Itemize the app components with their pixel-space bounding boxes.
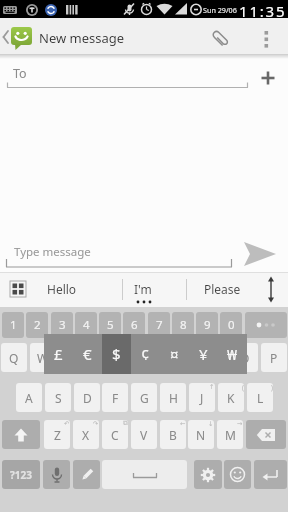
- staticText: P: [270, 350, 278, 366]
- staticText: K: [227, 390, 235, 406]
- button[interactable]: 6: [123, 312, 145, 338]
- staticText: 9: [204, 317, 211, 333]
- button[interactable]: 7: [148, 312, 170, 338]
- staticText: Type message: [14, 244, 91, 260]
- button[interactable]: A: [16, 383, 42, 412]
- button[interactable]: V: [131, 420, 157, 449]
- button[interactable]: [73, 460, 100, 489]
- button[interactable]: [194, 460, 222, 489]
- button[interactable]: ¢: [131, 334, 160, 374]
- button[interactable]: I: [203, 343, 229, 372]
- button[interactable]: L: [247, 383, 273, 412]
- button[interactable]: [208, 27, 233, 52]
- button[interactable]: U: [174, 343, 200, 372]
- button[interactable]: 5: [99, 312, 121, 338]
- staticText: W: [37, 350, 49, 366]
- button[interactable]: [245, 312, 287, 338]
- button[interactable]: F: [102, 383, 128, 412]
- staticText: Q: [9, 350, 19, 366]
- button[interactable]: B: [160, 420, 186, 449]
- button[interactable]: 0: [220, 312, 242, 338]
- staticText: T: [127, 350, 134, 366]
- button[interactable]: [254, 460, 287, 489]
- staticText: Sun 29/06: [203, 5, 237, 15]
- button[interactable]: [6, 241, 232, 268]
- staticText: ↑: [209, 383, 215, 391]
- button[interactable]: H: [160, 383, 186, 412]
- button[interactable]: [224, 460, 251, 489]
- staticText: 5: [107, 317, 114, 333]
- button[interactable]: [102, 460, 187, 489]
- staticText: ): [271, 383, 273, 392]
- button[interactable]: ¥: [189, 334, 218, 374]
- button[interactable]: [258, 24, 274, 50]
- staticText: A: [25, 390, 33, 406]
- button[interactable]: D: [74, 383, 100, 412]
- button[interactable]: 2: [26, 312, 48, 338]
- staticText: ₩: [227, 344, 238, 364]
- staticText: ↷: [93, 420, 99, 428]
- button[interactable]: €: [73, 334, 102, 374]
- staticText: 11:35: [239, 1, 287, 19]
- button[interactable]: O: [232, 343, 258, 372]
- button[interactable]: R: [88, 343, 114, 372]
- staticText: ↓: [208, 420, 214, 428]
- staticText: L: [257, 390, 264, 406]
- button[interactable]: 9: [196, 312, 218, 338]
- button[interactable]: ?123: [2, 460, 40, 489]
- button[interactable]: S: [45, 383, 71, 412]
- button[interactable]: G: [131, 383, 157, 412]
- staticText: ⧉: [123, 420, 128, 427]
- button[interactable]: 4: [75, 312, 97, 338]
- button[interactable]: N: [188, 420, 214, 449]
- button[interactable]: X: [73, 420, 99, 449]
- button[interactable]: [246, 420, 286, 449]
- button[interactable]: J: [189, 383, 215, 412]
- button[interactable]: [2, 420, 40, 449]
- staticText: Please: [204, 281, 241, 297]
- staticText: New message: [39, 29, 125, 47]
- button[interactable]: C: [102, 420, 128, 449]
- staticText: Hello: [47, 281, 77, 297]
- staticText: ¤: [170, 344, 179, 364]
- button[interactable]: [11, 27, 32, 45]
- button[interactable]: E: [59, 343, 85, 372]
- button[interactable]: T: [117, 343, 143, 372]
- staticText: N: [196, 427, 206, 443]
- button[interactable]: ¤: [160, 334, 189, 374]
- staticText: D: [83, 390, 92, 406]
- staticText: F: [112, 390, 119, 406]
- staticText: 6: [131, 317, 138, 333]
- button[interactable]: I'm: [115, 273, 171, 304]
- staticText: Z: [54, 427, 61, 443]
- button[interactable]: [43, 460, 70, 489]
- button[interactable]: To: [0, 55, 288, 92]
- button[interactable]: £: [44, 334, 73, 374]
- button[interactable]: Q: [1, 343, 27, 372]
- button[interactable]: Z: [44, 420, 70, 449]
- button[interactable]: Please: [194, 273, 250, 304]
- staticText: 7: [156, 317, 163, 333]
- staticText: (: [242, 383, 244, 392]
- button[interactable]: ₩: [218, 334, 247, 374]
- button[interactable]: 3: [51, 312, 73, 338]
- staticText: →: [237, 420, 243, 428]
- button[interactable]: 8: [172, 312, 194, 338]
- staticText: V: [140, 427, 148, 443]
- button[interactable]: 1: [2, 312, 24, 338]
- button[interactable]: M: [217, 420, 243, 449]
- button[interactable]: W: [30, 343, 56, 372]
- button[interactable]: K: [218, 383, 244, 412]
- button[interactable]: [4, 276, 32, 304]
- button[interactable]: Y: [145, 343, 171, 372]
- staticText: $: [112, 344, 121, 364]
- button[interactable]: [242, 241, 278, 269]
- staticText: ¢: [141, 344, 150, 364]
- staticText: X: [82, 427, 90, 443]
- button[interactable]: Hello: [34, 273, 90, 304]
- button[interactable]: $: [102, 334, 131, 374]
- button[interactable]: P: [261, 343, 287, 372]
